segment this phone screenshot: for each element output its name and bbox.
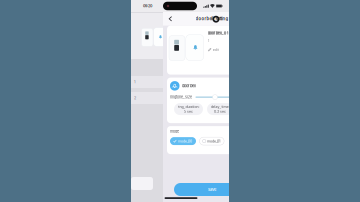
- button[interactable]: edit: [208, 48, 219, 52]
- button[interactable]: Back: [165, 13, 176, 25]
- staticText: ring_duration:: [177, 105, 199, 109]
- staticText: ringtone_size: [170, 95, 192, 99]
- button[interactable]: mode_01: [199, 137, 224, 145]
- staticText: 0.3 sec: [214, 109, 226, 113]
- staticText: doorbell: [182, 83, 196, 88]
- staticText: doorbell_setting: [195, 16, 228, 21]
- staticText: delay_time:: [210, 105, 229, 109]
- staticText: 1: [208, 39, 209, 43]
- staticText: doorbell_01: [208, 31, 229, 35]
- staticText: 09:20: [143, 4, 152, 8]
- staticText: save: [208, 187, 216, 192]
- staticText: 1: [134, 80, 136, 84]
- staticText: 2: [134, 96, 136, 100]
- staticText: edit: [213, 48, 219, 52]
- button[interactable]: mode_00: [170, 137, 196, 145]
- button[interactable]: save: [163, 183, 261, 196]
- staticText: mode_00: [178, 139, 192, 143]
- staticText: 5 sec: [184, 109, 193, 113]
- staticText: mode: [170, 129, 179, 134]
- staticText: mode_01: [207, 139, 220, 143]
